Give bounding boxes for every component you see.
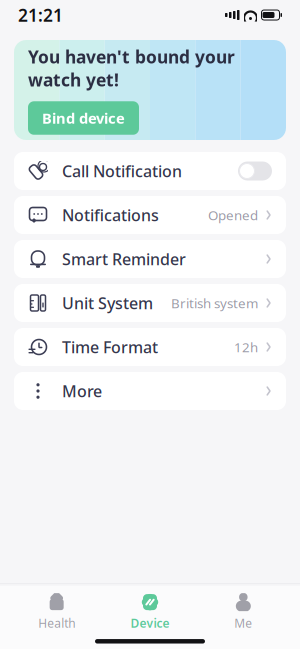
staticText: Bind device xyxy=(42,108,125,128)
staticText: Health xyxy=(38,615,75,631)
staticText: Smart Reminder xyxy=(62,248,186,270)
button[interactable]: Call Notification xyxy=(14,152,286,190)
button[interactable]: Device xyxy=(103,592,197,631)
staticText: 21:21 xyxy=(18,3,63,26)
staticText: Call Notification xyxy=(62,160,182,182)
staticText: British system xyxy=(171,294,258,312)
button[interactable]: Time Format xyxy=(14,328,286,366)
staticText: 12h xyxy=(234,338,258,356)
staticText: Unit System xyxy=(62,292,153,314)
button[interactable]: Me xyxy=(197,592,290,631)
button[interactable]: Health xyxy=(10,592,103,631)
staticText: Notifications xyxy=(62,204,159,226)
staticText: You haven't bound your watch yet! xyxy=(28,45,235,91)
staticText: More xyxy=(62,380,102,402)
staticText: Opened xyxy=(208,206,258,224)
button[interactable]: Unit System xyxy=(14,284,286,322)
staticText: Me xyxy=(234,615,252,631)
staticText: Device xyxy=(130,615,169,631)
button[interactable]: Bind device xyxy=(28,101,139,135)
button[interactable]: More xyxy=(14,372,286,410)
staticText: Time Format xyxy=(62,336,158,358)
button[interactable]: Notifications xyxy=(14,196,286,234)
button[interactable]: Smart Reminder xyxy=(14,240,286,278)
